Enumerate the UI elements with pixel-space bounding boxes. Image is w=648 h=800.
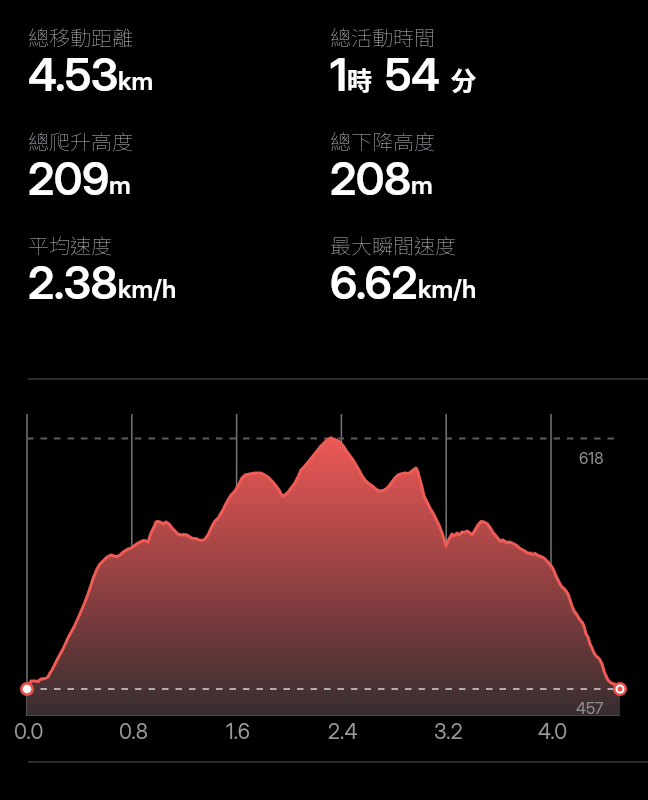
staticText: 4.0 — [538, 719, 568, 744]
staticText: 分 — [451, 61, 477, 97]
staticText: m — [109, 170, 131, 200]
staticText: 1.6 — [226, 719, 250, 744]
staticText: 209 — [28, 151, 109, 205]
staticText: 總活動時間 — [330, 22, 435, 52]
staticText: 最大瞬間速度 — [330, 230, 456, 260]
staticText: 2.4 — [328, 719, 358, 744]
staticText: 208 — [330, 151, 411, 205]
staticText: 6.62 — [330, 255, 418, 309]
staticText: 總下降高度 — [330, 126, 435, 156]
staticText: 0.0 — [14, 719, 44, 744]
staticText: 平均速度 — [28, 230, 112, 260]
staticText: m — [411, 170, 433, 200]
staticText: 0.8 — [119, 719, 148, 744]
staticText: 2.38 — [28, 255, 118, 309]
staticText: km/h — [418, 274, 477, 304]
staticText: 總爬升高度 — [28, 126, 133, 156]
staticText: 457 — [576, 698, 604, 717]
staticText: km/h — [118, 274, 177, 304]
staticText: 1 — [330, 47, 347, 101]
staticText: 4.53 — [28, 47, 118, 101]
staticText: 54 — [385, 47, 440, 101]
staticText: 時 — [347, 61, 373, 97]
staticText: 總移動距離 — [28, 22, 133, 52]
staticText: 618 — [579, 448, 604, 467]
staticText: km — [118, 66, 154, 96]
staticText: 3.2 — [434, 719, 463, 744]
